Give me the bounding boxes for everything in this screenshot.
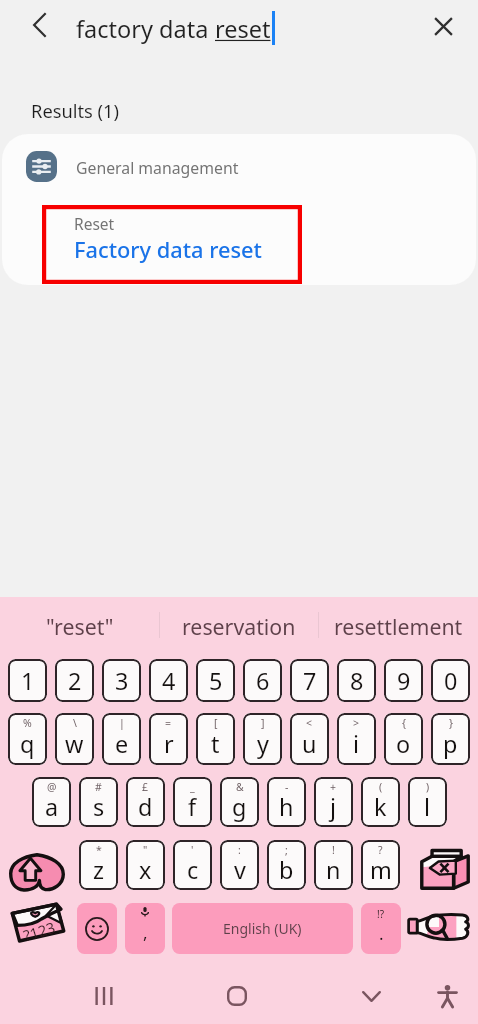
staticText: : [238,843,241,857]
button[interactable]: @ [32,777,71,827]
staticText: ' [191,843,194,857]
staticText: [ [214,716,218,730]
staticText: r [164,728,174,760]
button[interactable]: £ [126,777,165,827]
button[interactable]: Reset [74,213,304,265]
button[interactable]: Shift [9,853,65,892]
button[interactable]: resettlement [319,597,478,652]
button[interactable]: General management [2,134,476,198]
button[interactable]: & [220,777,259,827]
button[interactable]: ] [243,713,282,765]
button[interactable]: Emoji [77,903,117,954]
button[interactable]: Search [408,913,470,941]
staticText: ( [379,780,383,794]
staticText: ; [285,843,288,857]
staticText: @ [47,780,57,794]
button[interactable]: _ [173,777,212,827]
button[interactable]: > [337,713,376,765]
staticText: ! [332,843,335,857]
staticText: t [211,728,220,760]
staticText: 6 [256,665,270,697]
staticText: n [326,854,341,886]
button[interactable]: 0 [431,659,470,702]
button[interactable]: Hide keyboard [343,968,399,1024]
staticText: \ [73,716,77,730]
button[interactable]: 4 [149,659,188,702]
staticText: ) [426,780,430,794]
staticText: f [188,791,197,823]
button[interactable]: : [220,840,259,890]
staticText: w [65,728,84,760]
button[interactable]: ! [314,840,353,890]
staticText: * [96,843,102,857]
staticText: 3 [115,665,129,697]
button[interactable]: | [102,713,141,765]
button[interactable]: 5 [196,659,235,702]
button[interactable]: Clear search [414,0,478,58]
staticText: o [396,728,411,760]
button[interactable]: 7 [290,659,329,702]
button[interactable]: ? [361,840,400,890]
button[interactable]: , [125,903,165,954]
staticText: ? [378,843,383,857]
button[interactable]: Recent apps [76,968,132,1024]
staticText: reset [215,13,271,45]
button[interactable]: Accessibility [419,968,475,1024]
button[interactable]: % [8,713,47,765]
staticText: d [138,791,153,823]
staticText: 8 [350,665,364,697]
staticText: resettlement [334,612,463,641]
staticText: } [449,716,453,730]
button[interactable]: 2 [55,659,94,702]
button[interactable]: reservation [159,597,318,652]
button[interactable]: 8 [337,659,376,702]
button[interactable]: " [126,840,165,890]
staticText: _ [190,780,195,794]
button[interactable]: [ [196,713,235,765]
button[interactable]: !? [361,903,401,954]
staticText: y [257,728,269,760]
button[interactable]: Backspace [418,846,472,891]
staticText: c [187,854,199,886]
button[interactable]: = [149,713,188,765]
staticText: factory data [76,13,215,45]
staticText: { [402,716,406,730]
staticText: , [143,921,148,944]
button[interactable]: Symbols [10,903,66,943]
staticText: English (UK) [223,919,302,938]
button[interactable]: * [79,840,118,890]
button[interactable]: ( [361,777,400,827]
staticText: 1 [21,665,35,697]
staticText: - [285,780,289,794]
button[interactable]: } [431,713,470,765]
staticText: # [95,780,102,794]
button[interactable]: ; [267,840,306,890]
button[interactable]: ) [408,777,447,827]
staticText: j [330,791,337,823]
staticText: s [93,791,105,823]
staticText: 4 [162,665,176,697]
button[interactable]: 6 [243,659,282,702]
button[interactable]: English (UK) [172,903,353,954]
button[interactable]: { [384,713,423,765]
button[interactable]: < [290,713,329,765]
button[interactable]: 9 [384,659,423,702]
staticText: Results (1) [31,98,120,123]
button[interactable]: + [314,777,353,827]
staticText: 0 [444,665,458,697]
button[interactable]: 3 [102,659,141,702]
staticText: q [20,728,35,760]
staticText: b [279,854,294,886]
staticText: 7 [303,665,317,697]
button[interactable]: - [267,777,306,827]
button[interactable]: "reset" [0,597,159,652]
button[interactable]: ' [173,840,212,890]
staticText: + [330,780,337,794]
staticText: 5 [209,665,223,697]
button[interactable]: Home [209,968,265,1024]
staticText: e [115,728,129,760]
button[interactable]: \ [55,713,94,765]
button[interactable]: 1 [8,659,47,702]
button[interactable]: # [79,777,118,827]
button[interactable]: Back [0,0,70,58]
